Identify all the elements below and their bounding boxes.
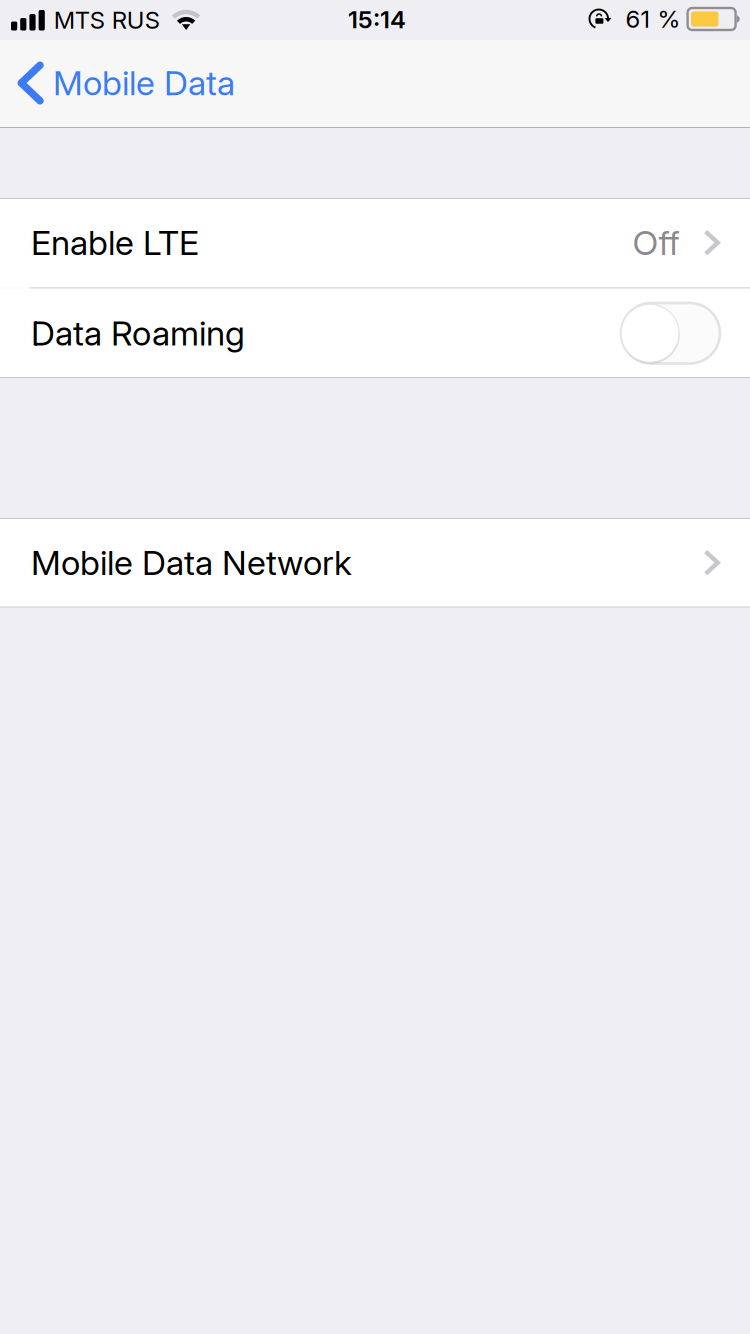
staticText: Mobile Data — [53, 62, 235, 103]
staticText: 15:14 — [348, 5, 406, 34]
staticText: Enable LTE — [31, 222, 199, 263]
button[interactable]: Data Roaming — [621, 303, 720, 363]
staticText: MTS RUS — [54, 5, 160, 34]
button[interactable]: Enable LTE — [0, 198, 750, 287]
button[interactable]: Mobile Data — [0, 40, 251, 126]
staticText: Data Roaming — [31, 313, 245, 354]
staticText: Off — [632, 222, 679, 263]
staticText: Mobile Data Network — [31, 542, 352, 583]
button[interactable]: Mobile Data Network — [0, 518, 750, 607]
staticText: 61 % — [626, 4, 681, 33]
